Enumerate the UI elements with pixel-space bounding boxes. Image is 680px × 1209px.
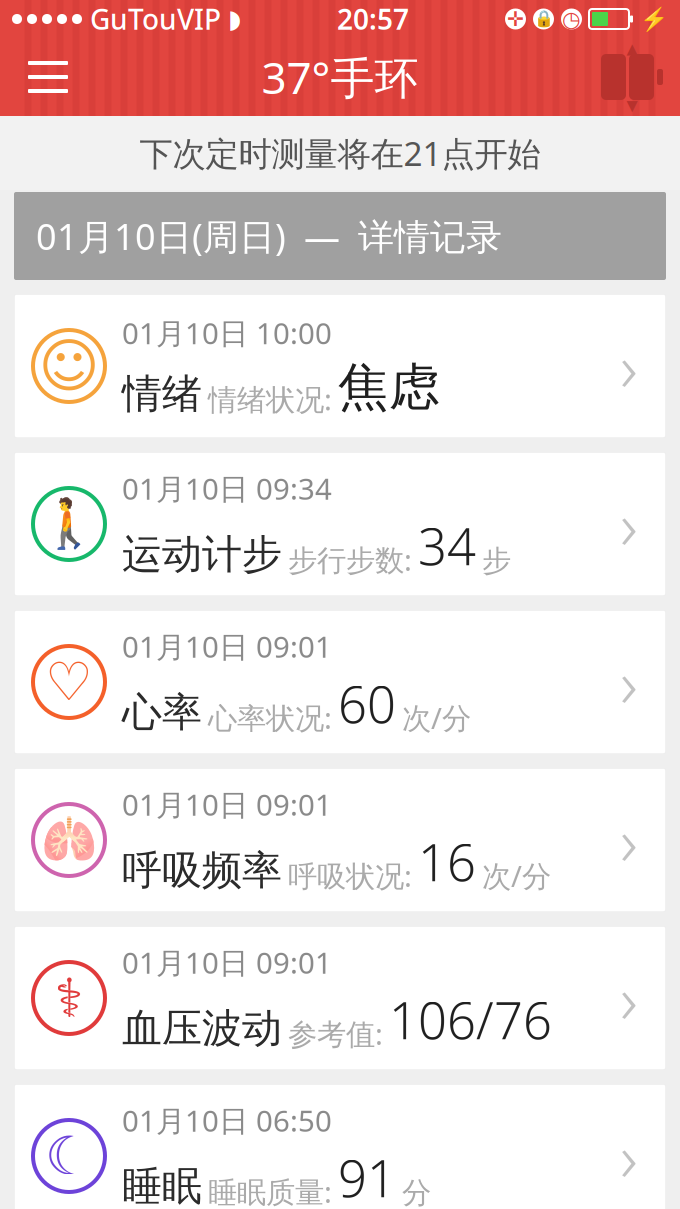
staticText: › — [620, 796, 638, 884]
staticText: 106/76 — [389, 986, 552, 1053]
staticText: 37°手环 — [261, 48, 418, 106]
staticText: ◷ — [562, 7, 581, 31]
staticText: 01月10日 09:01 — [122, 943, 332, 982]
button[interactable]: ☾ — [14, 1084, 666, 1209]
staticText: 20:57 — [337, 0, 409, 38]
staticText: 01月10日 09:34 — [122, 469, 332, 508]
button[interactable]: ⚕ — [14, 926, 666, 1070]
staticText: › — [620, 954, 638, 1042]
staticText: 情绪 — [122, 369, 202, 419]
staticText: 01月10日 06:50 — [122, 1101, 332, 1140]
button[interactable]: 🫁 — [14, 768, 666, 912]
staticText: 01月10日 09:01 — [122, 785, 332, 824]
staticText: 01月10日 09:01 — [122, 627, 332, 666]
staticText: 60 — [338, 670, 396, 737]
staticText: ⚕ — [54, 968, 83, 1028]
staticText: 34 — [418, 512, 476, 579]
staticText: 次/分 — [402, 698, 471, 737]
staticText: 情绪状况: — [208, 380, 332, 419]
staticText: ☺ — [38, 333, 99, 399]
staticText: 01月10日(周日) — 详情记录 — [36, 212, 502, 260]
staticText: 步行步数: — [288, 540, 412, 579]
button[interactable]: 设备电量 — [596, 41, 668, 113]
button[interactable]: ♡ — [14, 610, 666, 754]
staticText: 分 — [402, 1175, 431, 1209]
staticText: › — [620, 480, 638, 568]
staticText: 下次定时测量将在21点开始 — [139, 131, 540, 175]
staticText: ▼ — [626, 97, 637, 114]
staticText: ☾ — [45, 1126, 93, 1186]
staticText: ◗ — [228, 5, 241, 33]
staticText: 心率状况: — [208, 698, 332, 737]
button[interactable]: 01月10日(周日) — 详情记录 — [14, 192, 666, 280]
staticText: 心率 — [122, 688, 202, 737]
staticText: ♡ — [45, 652, 93, 712]
button[interactable]: 🚶 — [14, 452, 666, 596]
staticText: 🚶 — [39, 497, 99, 551]
staticText: 焦虑 — [338, 356, 440, 419]
staticText: 参考值: — [288, 1014, 383, 1053]
staticText: 睡眠 — [122, 1162, 202, 1209]
staticText: › — [620, 638, 638, 726]
staticText: ▲ — [626, 40, 637, 57]
staticText: 运动计步 — [122, 530, 282, 579]
button[interactable]: ☺ — [14, 294, 666, 438]
staticText: 步 — [482, 543, 511, 579]
staticText: 91 — [338, 1144, 396, 1209]
staticText: 呼吸状况: — [288, 856, 412, 895]
staticText: ✛ — [507, 8, 524, 30]
staticText: 血压波动 — [122, 1004, 282, 1053]
staticText: › — [620, 322, 638, 410]
staticText: 🔒 — [533, 10, 553, 28]
staticText: 🫁 — [41, 814, 97, 866]
staticText: 16 — [418, 828, 476, 895]
staticText: ⚡ — [640, 6, 668, 32]
staticText: 睡眠质量: — [208, 1172, 332, 1209]
staticText: 01月10日 10:00 — [122, 313, 332, 352]
staticText: GuTouVIP — [90, 0, 221, 38]
button[interactable]: 菜单 — [12, 41, 84, 113]
staticText: 次/分 — [482, 856, 551, 895]
staticText: 呼吸频率 — [122, 846, 282, 895]
staticText: › — [620, 1112, 638, 1200]
